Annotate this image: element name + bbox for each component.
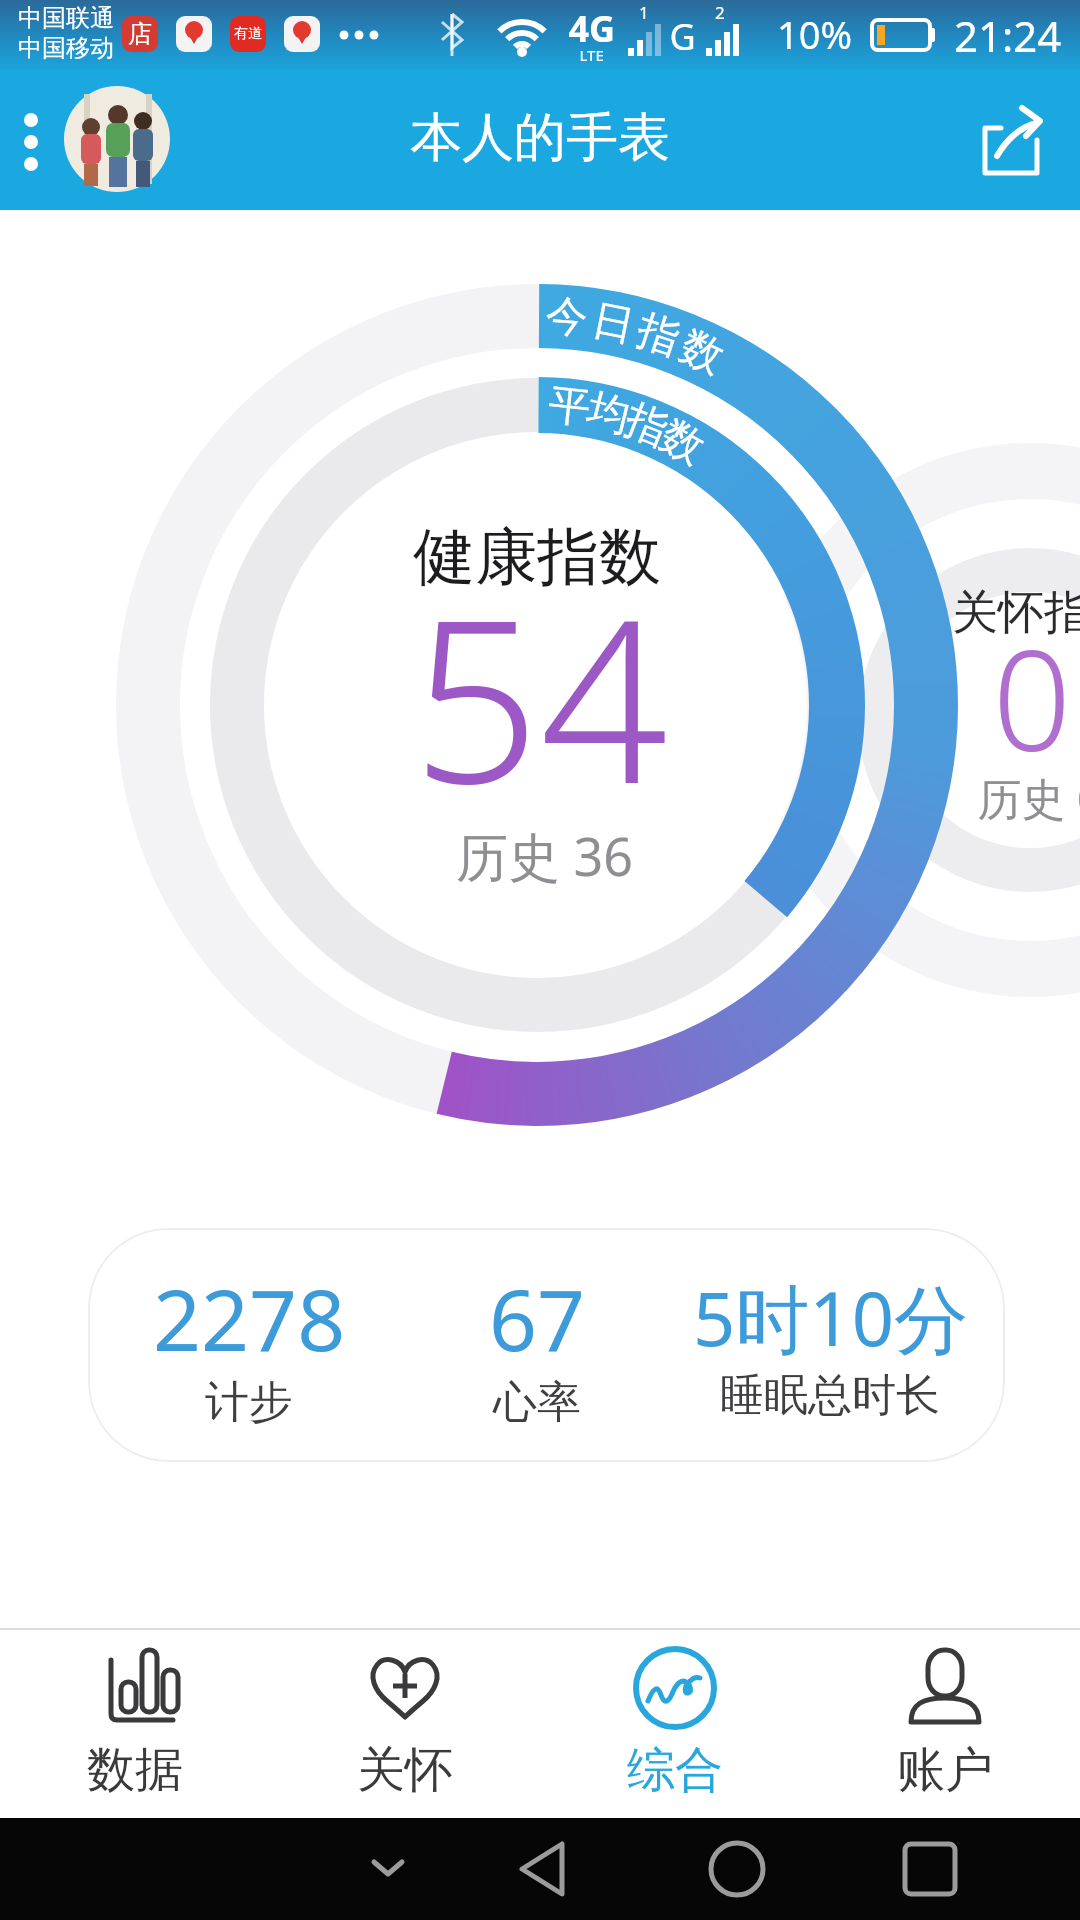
button[interactable]: 2278: [88, 1228, 1005, 1462]
button[interactable]: [810, 1818, 1080, 1920]
button[interactable]: [540, 1818, 810, 1920]
button[interactable]: [950, 98, 1062, 182]
staticText: 数据: [87, 1740, 183, 1800]
staticText: 睡眠总时长: [720, 1368, 940, 1423]
staticText: 综合: [627, 1740, 723, 1800]
staticText: 5时10分: [693, 1267, 968, 1368]
staticText: 计步: [205, 1375, 293, 1430]
button[interactable]: 数据: [0, 1630, 270, 1818]
button[interactable]: [64, 86, 170, 192]
button[interactable]: 关怀: [270, 1630, 540, 1818]
staticText: 2278: [153, 1261, 346, 1375]
button[interactable]: 综合: [540, 1630, 810, 1818]
staticText: 心率: [493, 1375, 581, 1430]
button[interactable]: 账户: [810, 1630, 1080, 1818]
button[interactable]: [270, 1818, 540, 1920]
button[interactable]: [8, 98, 54, 182]
staticText: 账户: [897, 1740, 993, 1800]
staticText: 关怀: [357, 1740, 453, 1800]
staticText: 67: [489, 1261, 586, 1375]
